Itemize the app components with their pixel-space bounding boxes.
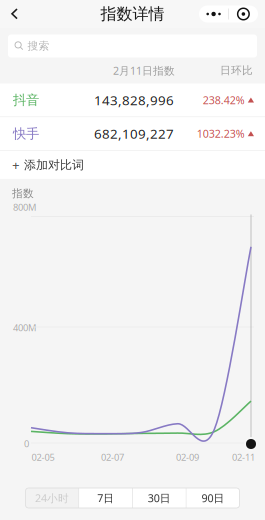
staticText: 1032.23% (197, 127, 245, 141)
staticText: 0 (24, 437, 29, 450)
staticText: 2月11日指数 (113, 63, 175, 78)
staticText: 指数详情 (100, 4, 164, 24)
staticText: 指数 (12, 187, 34, 200)
staticText: 02-09 (176, 451, 199, 463)
staticText: 7日 (97, 491, 114, 505)
button[interactable]: 90日 (187, 488, 240, 508)
staticText: 快手 (13, 125, 39, 142)
button[interactable]: More options (199, 5, 228, 22)
staticText: 02-11 (232, 451, 255, 463)
staticText: 30日 (148, 491, 171, 505)
button[interactable]: 搜索 (8, 34, 257, 57)
staticText: 搜索 (27, 39, 49, 52)
staticText: 24小时 (35, 491, 69, 505)
staticText: 143,828,996 (94, 91, 174, 109)
staticText: 日环比 (220, 64, 253, 77)
staticText: 02-07 (101, 451, 124, 463)
staticText: + (12, 156, 20, 174)
button[interactable]: 快手 (0, 117, 265, 150)
staticText: 682,109,227 (94, 125, 174, 142)
staticText: 400M (13, 321, 36, 334)
button[interactable]: 抖音 (0, 83, 265, 116)
staticText: 02-05 (31, 451, 54, 463)
staticText: 添加对比词 (24, 157, 84, 172)
button[interactable]: 24小时 (25, 488, 78, 508)
button[interactable]: + (0, 151, 265, 179)
button[interactable]: Back (0, 0, 41, 28)
staticText: 238.42% (203, 93, 245, 107)
button[interactable]: Close mini program (229, 5, 258, 22)
staticText: 800M (13, 201, 36, 213)
staticText: 抖音 (13, 92, 39, 108)
button[interactable]: 30日 (133, 488, 186, 508)
staticText: 90日 (202, 491, 225, 505)
button[interactable]: 7日 (79, 488, 132, 508)
